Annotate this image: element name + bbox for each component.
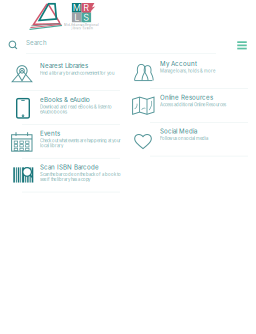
staticText: Social Media [160,128,197,135]
button[interactable]: Social Media [128,123,256,156]
staticText: Nearest Libraries [40,62,88,70]
staticText: Manage loans, holds & more [160,68,215,73]
staticText: Access additional Online Resources [160,102,226,107]
staticText: Follow us on social media [160,136,208,141]
staticText: Download and read eBooks & listen to eAu… [40,104,112,115]
button[interactable]: Scan ISBN Barcode [0,159,128,192]
button[interactable]: Events [0,125,128,159]
button[interactable]: Search [26,36,218,54]
staticText: Scan ISBN Barcode [40,164,99,171]
staticText: My Account [160,60,197,67]
button[interactable]: Nearest Libraries [0,57,128,91]
staticText: eBooks & eAudio [40,96,90,103]
staticText: Events [40,130,60,137]
staticText: L [74,12,79,23]
staticText: Search [26,39,47,46]
staticText: Library System [70,27,92,30]
staticText: Scan the barcode on the back of a book t… [40,172,121,182]
staticText: Check out what events are happening at y… [40,138,121,148]
staticText: R [83,2,89,13]
staticText: M [73,2,81,13]
button[interactable]: Search [0,36,26,54]
button[interactable]: Online Resources [128,89,256,123]
button[interactable]: eBooks & eAudio [0,91,128,125]
button[interactable]: Menu [228,36,256,54]
staticText: Online Resources [160,94,213,101]
button[interactable]: My Account [128,55,256,89]
staticText: Mid-Arkansas Regional [64,23,99,27]
staticText: S [83,12,89,23]
staticText: Find a library branch convenient for you [40,71,114,76]
